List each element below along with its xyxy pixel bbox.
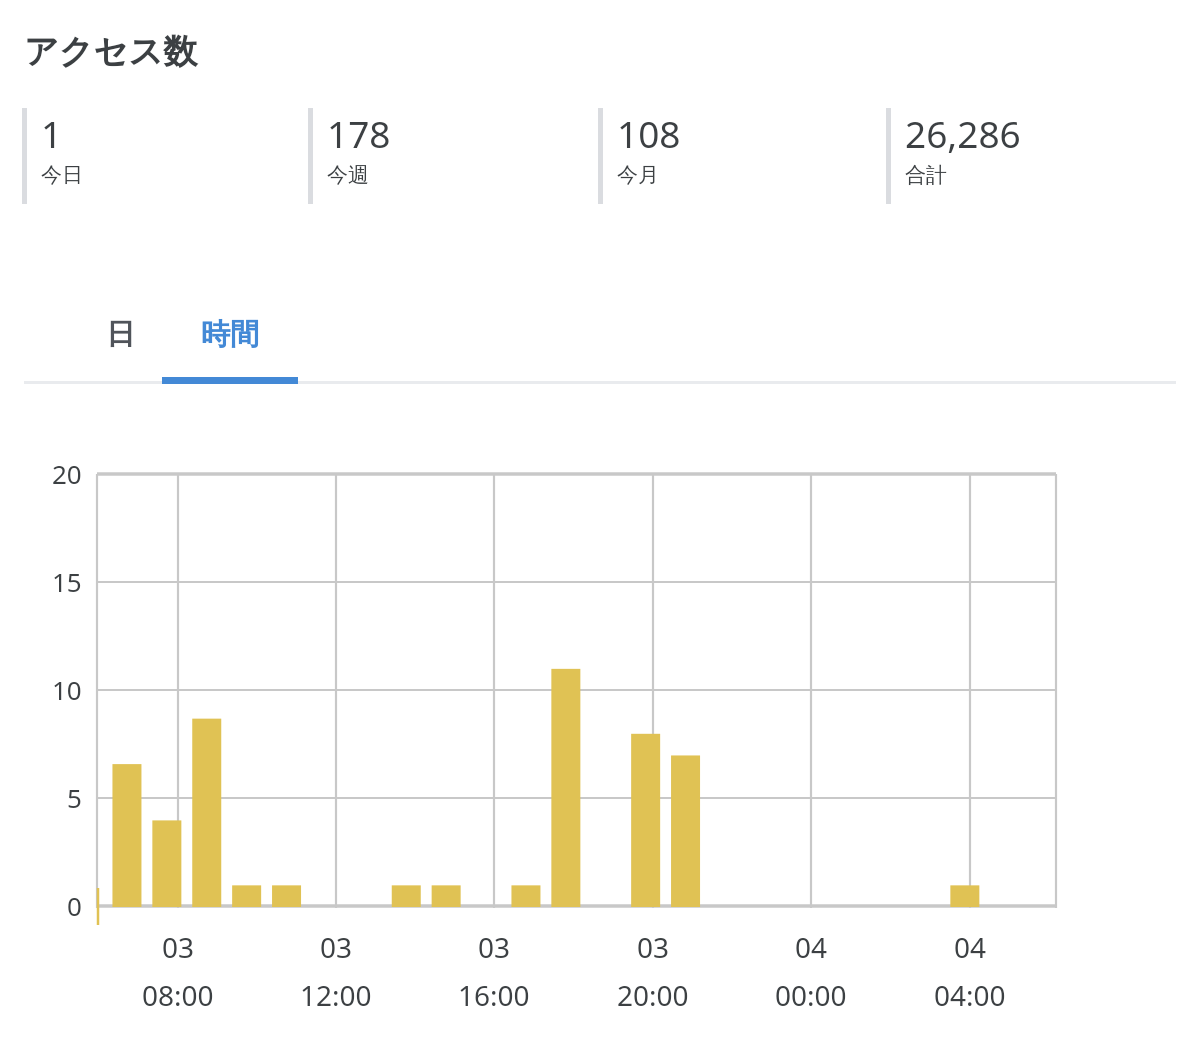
button[interactable]: 1 xyxy=(22,108,83,208)
staticText: 03 xyxy=(478,928,511,966)
staticText: 合計 xyxy=(905,162,947,188)
staticText: アクセス数 xyxy=(24,30,198,73)
staticText: 16:00 xyxy=(458,976,530,1014)
staticText: 10 xyxy=(52,672,82,707)
staticText: 178 xyxy=(327,108,391,158)
staticText: 1 xyxy=(41,108,63,158)
button[interactable]: 時間 xyxy=(162,290,298,378)
button[interactable]: 108 xyxy=(598,108,681,208)
staticText: 03 xyxy=(162,928,195,966)
staticText: 108 xyxy=(617,108,681,158)
staticText: 03 xyxy=(637,928,670,966)
staticText: 20:00 xyxy=(617,976,689,1014)
staticText: 15 xyxy=(52,564,82,599)
staticText: 今週 xyxy=(327,162,369,188)
staticText: 00:00 xyxy=(775,976,847,1014)
button[interactable]: 日 xyxy=(78,290,162,378)
staticText: 時間 xyxy=(201,316,259,353)
button[interactable]: 26,286 xyxy=(886,108,1021,208)
staticText: 04 xyxy=(954,928,987,966)
staticText: 12:00 xyxy=(300,976,372,1014)
staticText: 日 xyxy=(106,316,135,353)
staticText: 04 xyxy=(795,928,828,966)
staticText: 26,286 xyxy=(905,108,1021,158)
staticText: 08:00 xyxy=(142,976,214,1014)
staticText: 今日 xyxy=(41,162,83,188)
staticText: 0 xyxy=(67,888,82,923)
button[interactable]: 178 xyxy=(308,108,391,208)
staticText: 04:00 xyxy=(934,976,1006,1014)
staticText: 20 xyxy=(52,456,82,491)
staticText: 今月 xyxy=(617,162,659,188)
staticText: 5 xyxy=(67,780,82,815)
staticText: 03 xyxy=(320,928,353,966)
